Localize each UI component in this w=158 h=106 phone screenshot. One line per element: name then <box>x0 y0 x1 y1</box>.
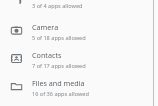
staticText: Camera <box>32 22 59 32</box>
staticText: Files and media <box>32 78 85 88</box>
button[interactable]: Files and media <box>0 78 158 106</box>
button[interactable]: Call logs permission <box>0 0 158 12</box>
button[interactable]: Contacts <box>0 50 158 78</box>
staticText: 5 of 18 apps allowed <box>32 34 86 42</box>
staticText: Contacts <box>32 50 62 60</box>
staticText: 16 of 36 apps allowed <box>32 90 89 98</box>
button[interactable]: Camera <box>0 22 158 50</box>
staticText: 7 of 17 apps allowed <box>32 62 86 70</box>
staticText: 3 of 4 apps allowed <box>32 2 83 10</box>
